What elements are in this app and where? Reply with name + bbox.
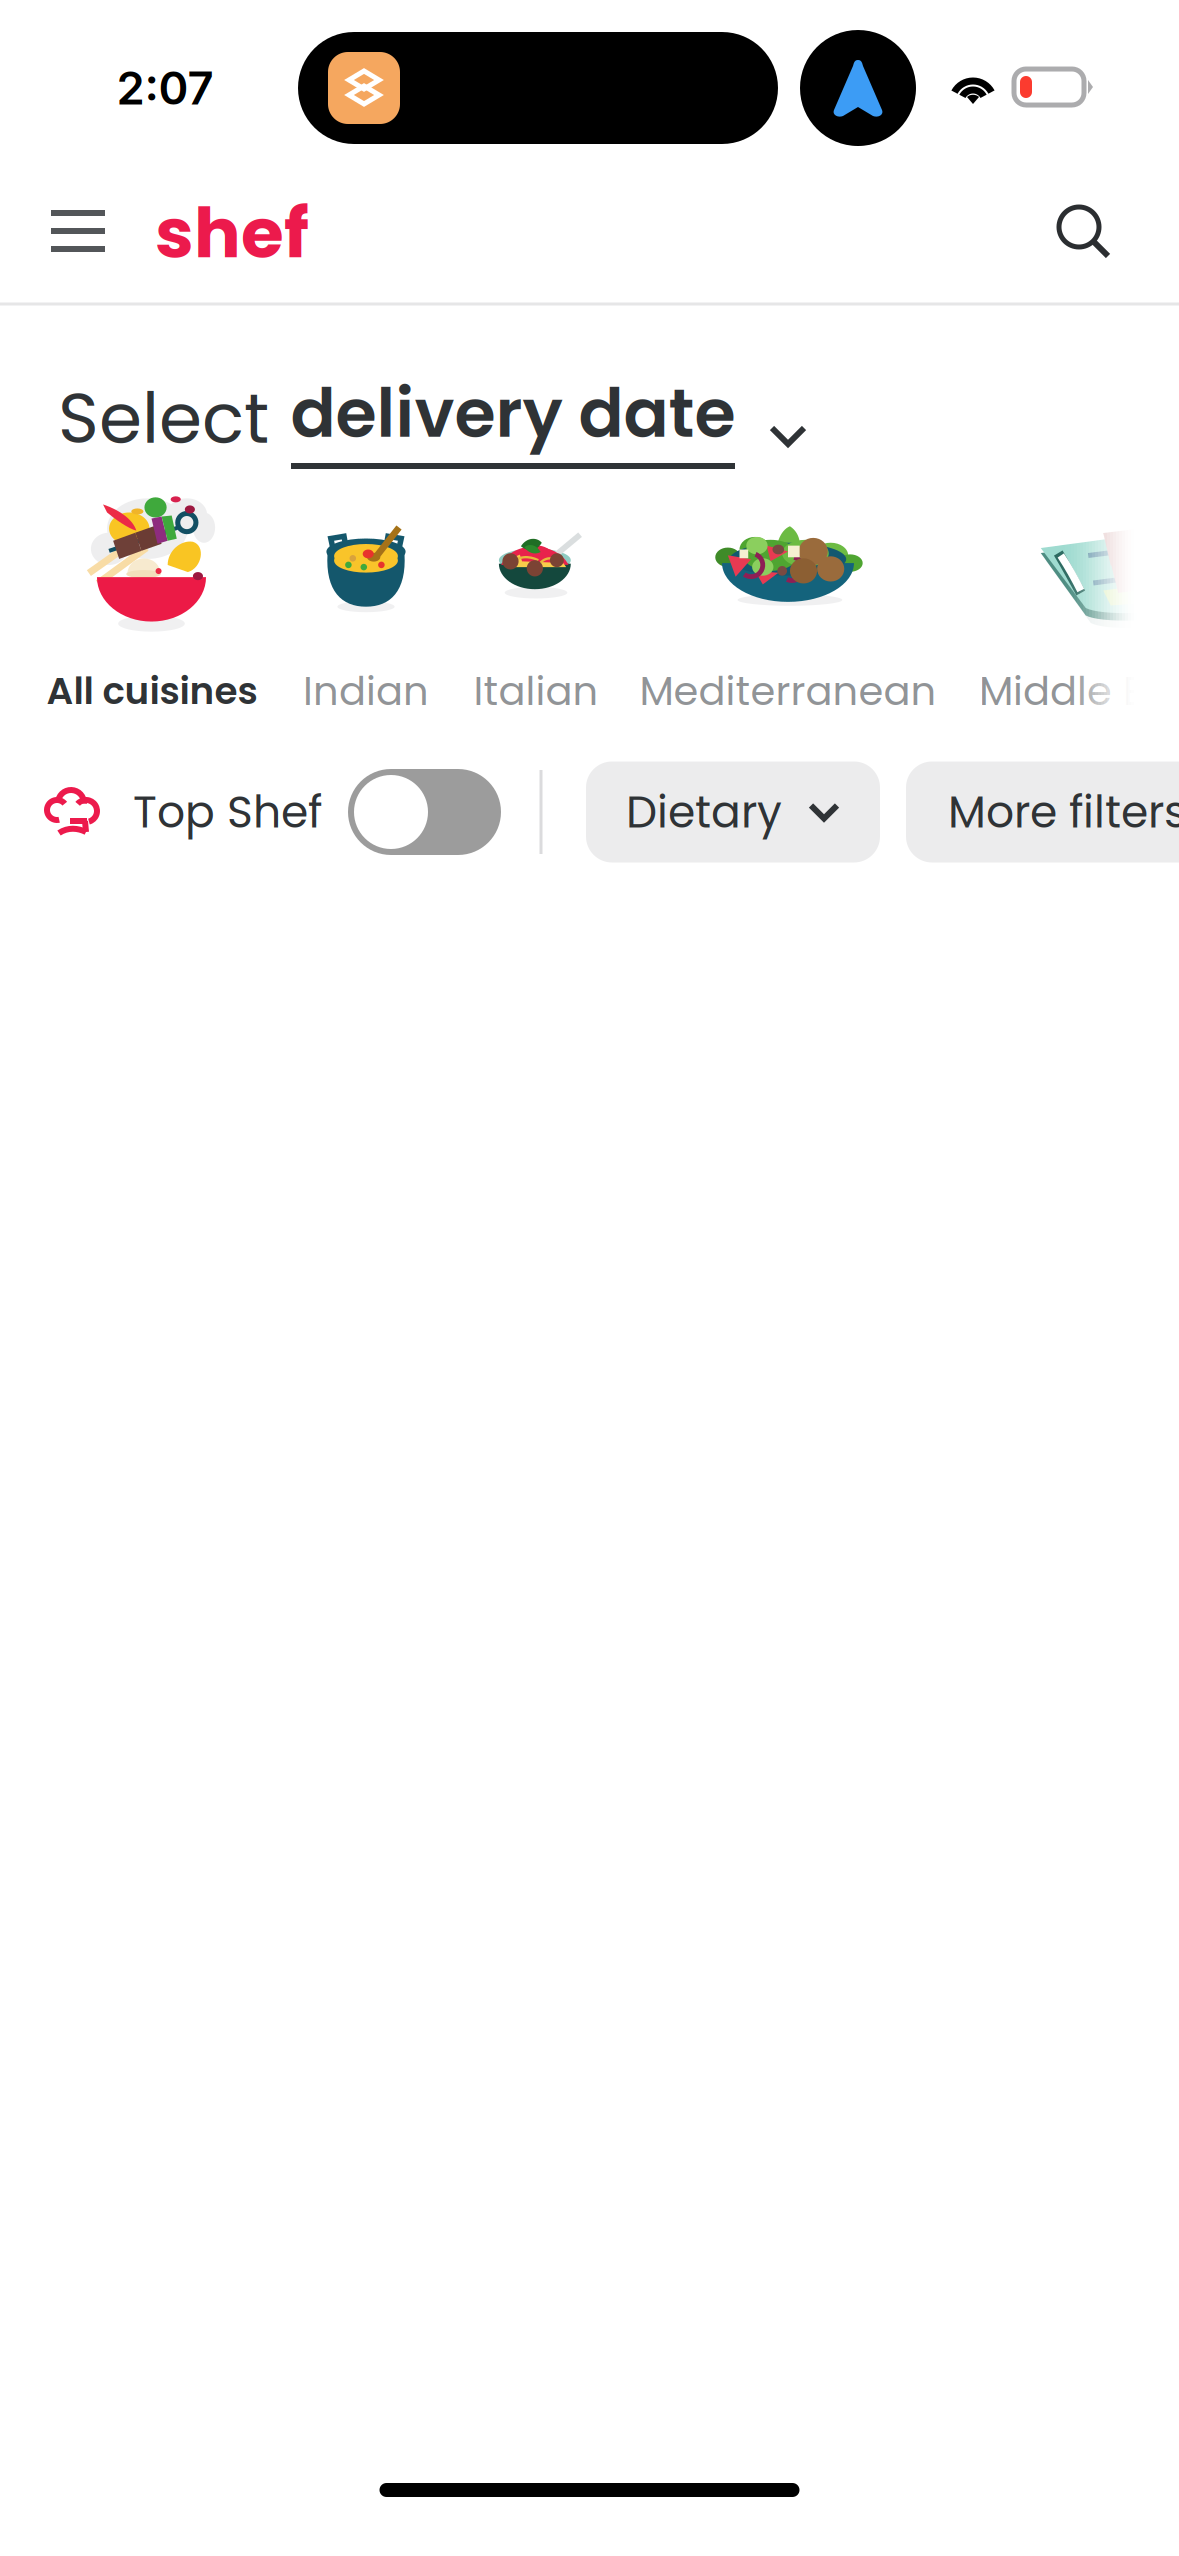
button[interactable]: Top Shef filter	[46, 757, 498, 867]
button[interactable]: shef	[147, 188, 317, 278]
button[interactable]: Search	[1027, 175, 1143, 291]
staticText: Italian	[473, 663, 598, 719]
staticText: 2:07	[116, 61, 213, 115]
staticText: More filters	[948, 781, 1179, 843]
button[interactable]: Indian	[281, 470, 451, 720]
staticText: Select	[58, 370, 269, 467]
staticText: Middle Eastern	[979, 663, 1179, 719]
button[interactable]: Select	[0, 349, 1179, 469]
staticText: Top Shef	[133, 781, 322, 843]
staticText: Indian	[303, 663, 429, 719]
staticText: delivery date	[290, 367, 735, 460]
button[interactable]: Dietary	[586, 761, 880, 862]
button[interactable]: Menu	[11, 174, 145, 288]
staticText: shef	[155, 184, 309, 282]
staticText: Mediterranean	[639, 663, 936, 719]
button[interactable]: Middle Eastern	[981, 661, 1179, 721]
button[interactable]: Mediterranean	[628, 470, 948, 720]
button[interactable]: All cuisines	[27, 470, 277, 720]
staticText: Dietary	[626, 781, 782, 843]
button[interactable]: Italian	[451, 470, 621, 720]
button[interactable]: More filters	[906, 761, 1179, 862]
staticText: All cuisines	[46, 665, 257, 717]
